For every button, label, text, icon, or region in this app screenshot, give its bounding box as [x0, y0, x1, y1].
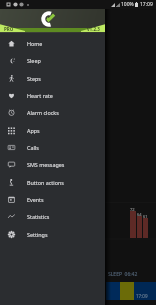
- staticText: Steps: [27, 75, 41, 82]
- staticText: SMS messages: [27, 161, 65, 168]
- button[interactable]: Sleep: [0, 52, 105, 69]
- staticText: SLEEP 06:42: [108, 271, 138, 278]
- button[interactable]: Button actions: [0, 174, 105, 191]
- staticText: Home: [27, 40, 43, 47]
- staticText: 64: [137, 212, 142, 217]
- staticText: Button actions: [27, 179, 64, 186]
- button[interactable]: Heart rate: [0, 87, 105, 104]
- staticText: Apps: [27, 127, 40, 134]
- button[interactable]: Events: [0, 191, 105, 208]
- staticText: 61: [143, 214, 148, 219]
- staticText: Events: [27, 196, 44, 203]
- button[interactable]: Calls: [0, 139, 105, 156]
- staticText: Calls: [27, 144, 39, 151]
- staticText: Settings: [27, 231, 48, 238]
- button[interactable]: Steps: [0, 70, 105, 87]
- staticText: Sleep: [27, 57, 41, 64]
- staticText: v1.2.3: [87, 26, 100, 32]
- button[interactable]: SMS messages: [0, 156, 105, 173]
- staticText: 17:09: [136, 293, 148, 299]
- staticText: 100%: [121, 1, 134, 8]
- button[interactable]: Settings: [0, 226, 105, 243]
- button[interactable]: Statistics: [0, 208, 105, 225]
- staticText: Statistics: [27, 213, 50, 220]
- staticText: Alarm clocks: [27, 109, 59, 116]
- staticText: 17:09: [140, 1, 153, 8]
- staticText: 72: [130, 207, 135, 212]
- button[interactable]: Home: [0, 35, 105, 52]
- button[interactable]: Apps: [0, 122, 105, 139]
- staticText: PRO: [4, 26, 14, 32]
- staticText: Heart rate: [27, 92, 53, 99]
- button[interactable]: Alarm clocks: [0, 104, 105, 121]
